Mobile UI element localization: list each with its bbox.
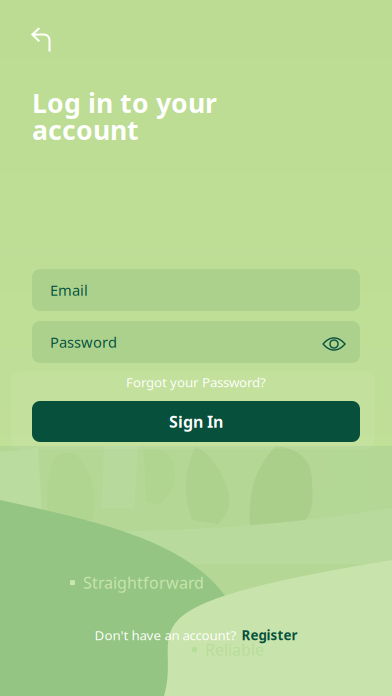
staticText: Email bbox=[50, 280, 88, 300]
button[interactable]: Forgot your Password? bbox=[32, 370, 360, 394]
button[interactable]: Show password bbox=[318, 328, 350, 360]
staticText: Sign In bbox=[169, 411, 223, 432]
staticText: account bbox=[32, 112, 139, 147]
staticText: Straightforward bbox=[83, 572, 204, 593]
staticText: Register bbox=[241, 626, 297, 644]
button[interactable]: Register bbox=[241, 626, 297, 644]
button[interactable]: Sign In bbox=[32, 401, 360, 442]
staticText: Log in to your bbox=[32, 85, 217, 120]
staticText: Don't have an account? bbox=[94, 626, 236, 644]
button[interactable]: Back bbox=[16, 17, 66, 63]
staticText: Password bbox=[50, 332, 117, 352]
staticText: Reliable bbox=[205, 639, 264, 660]
staticText: Forgot your Password? bbox=[126, 373, 266, 391]
